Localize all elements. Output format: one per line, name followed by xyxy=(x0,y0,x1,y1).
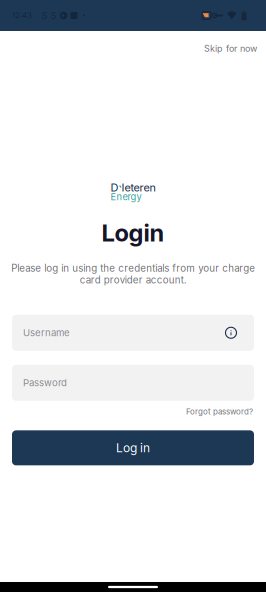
staticText: Ieteren xyxy=(121,181,155,194)
staticText: Username xyxy=(23,327,70,339)
staticText: Password xyxy=(23,377,67,389)
staticText: Skip for now xyxy=(204,43,257,54)
staticText: Forgot password? xyxy=(186,407,253,416)
staticText: S xyxy=(41,10,47,21)
staticText: Please log in using the credentials from… xyxy=(11,262,255,286)
button[interactable]: Password xyxy=(12,365,254,401)
staticText: Login xyxy=(101,218,164,247)
staticText: Log in xyxy=(116,441,150,455)
staticText: S xyxy=(50,10,56,21)
staticText: Energy xyxy=(110,191,141,202)
button[interactable]: Log in xyxy=(12,430,254,465)
staticText: D xyxy=(110,181,118,194)
button[interactable]: Skip for now xyxy=(194,38,266,59)
staticText: 12:43 xyxy=(12,11,32,20)
button[interactable]: Username xyxy=(12,315,254,351)
button[interactable]: About the username xyxy=(225,327,237,339)
button[interactable]: Forgot password? xyxy=(185,404,254,419)
